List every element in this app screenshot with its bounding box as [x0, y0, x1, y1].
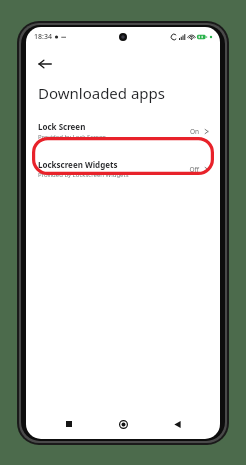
staticText: Lock Screen	[38, 121, 86, 132]
button[interactable]: Home	[112, 413, 134, 435]
button[interactable]: Back	[166, 413, 188, 435]
staticText: 18:34	[34, 32, 52, 42]
staticText: Downloaded apps	[38, 83, 166, 103]
staticText: Provided by Lock Screen	[38, 133, 107, 141]
staticText: Off	[189, 165, 199, 174]
staticText: Provided by Lockscreen Widgets	[38, 171, 129, 179]
button[interactable]: Lock Screen	[26, 117, 220, 145]
button[interactable]: Recent apps	[58, 413, 80, 435]
staticText: Lockscreen Widgets	[38, 159, 118, 170]
button[interactable]: Back	[32, 51, 58, 77]
button[interactable]: Lockscreen Widgets	[26, 155, 220, 183]
staticText: On	[189, 127, 199, 136]
